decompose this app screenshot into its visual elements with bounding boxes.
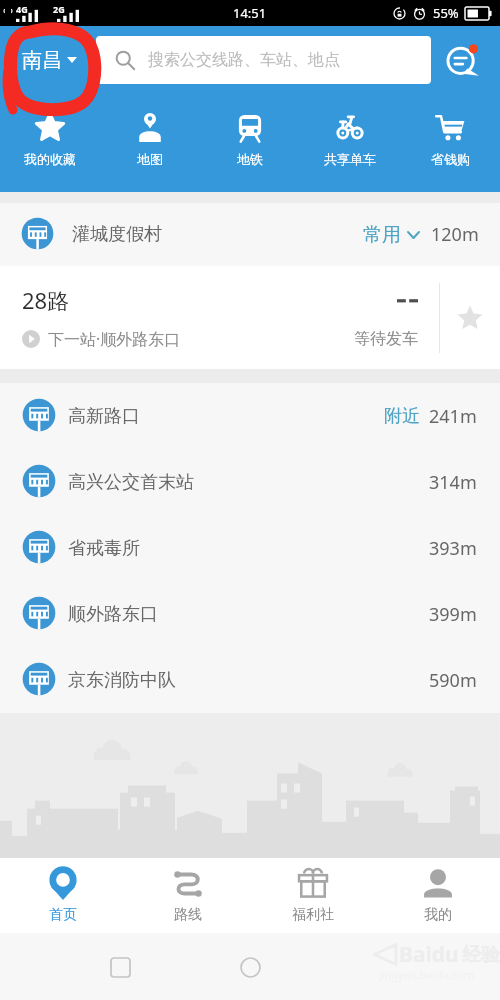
staticText: 14:51 xyxy=(233,4,267,22)
button[interactable]: Messages xyxy=(437,34,489,86)
button[interactable]: 高新路口 xyxy=(0,383,500,449)
button[interactable]: 28路 xyxy=(0,266,500,369)
staticText: 下一站·顺外路东口 xyxy=(48,328,181,350)
staticText: 高兴公交首末站 xyxy=(68,471,194,494)
button[interactable]: 省钱购 xyxy=(400,112,500,167)
staticText: 120m xyxy=(431,222,479,247)
staticText: 等待发车 xyxy=(354,329,418,349)
staticText: 京东消防中队 xyxy=(68,669,176,692)
staticText: 399m xyxy=(429,602,477,627)
staticText: 共享单车 xyxy=(324,151,376,167)
staticText: 2G xyxy=(53,3,65,15)
staticText: 28路 xyxy=(22,285,70,315)
button[interactable]: 路线 xyxy=(125,858,250,933)
button[interactable]: 福利社 xyxy=(250,858,375,933)
button[interactable]: 灌城度假村 xyxy=(0,203,500,266)
staticText: 省钱购 xyxy=(431,151,470,167)
staticText: 55% xyxy=(433,4,459,22)
staticText: 路线 xyxy=(174,906,202,924)
staticText: 地铁 xyxy=(237,151,263,167)
staticText: 搜索公交线路、车站、地点 xyxy=(148,50,340,70)
staticText: 经验 xyxy=(462,943,500,967)
staticText: 首页 xyxy=(49,906,77,924)
button[interactable]: 省戒毒所 xyxy=(0,515,500,581)
button[interactable]: 顺外路东口 xyxy=(0,581,500,647)
button[interactable]: 南昌 xyxy=(14,40,85,80)
staticText: 我的 xyxy=(424,906,452,924)
button[interactable]: 我的收藏 xyxy=(0,112,100,167)
staticText: 我的收藏 xyxy=(24,151,76,167)
button[interactable]: 地图 xyxy=(100,112,200,167)
button[interactable]: Home xyxy=(224,941,276,993)
button[interactable]: 首页 xyxy=(0,858,125,933)
staticText: 314m xyxy=(429,470,477,495)
staticText: 590m xyxy=(429,668,477,693)
button[interactable]: 地铁 xyxy=(200,112,300,167)
staticText: 顺外路东口 xyxy=(68,603,158,626)
staticText: 附近 xyxy=(384,405,420,428)
staticText: 393m xyxy=(429,536,477,561)
staticText: 高新路口 xyxy=(68,405,140,428)
staticText: 南昌 xyxy=(22,48,62,73)
staticText: 4G xyxy=(16,3,28,15)
button[interactable]: Favourite xyxy=(440,266,500,369)
staticText: 241m xyxy=(429,404,477,429)
button[interactable]: 搜索公交线路、车站、地点 xyxy=(96,36,431,84)
staticText: 地图 xyxy=(137,151,163,167)
button[interactable]: 我的 xyxy=(375,858,500,933)
staticText: 灌城度假村 xyxy=(72,223,162,246)
staticText: 省戒毒所 xyxy=(68,537,140,560)
staticText: 常用 xyxy=(363,223,401,247)
button[interactable]: 共享单车 xyxy=(300,112,400,167)
staticText: 福利社 xyxy=(292,906,334,924)
button[interactable]: 高兴公交首末站 xyxy=(0,449,500,515)
button[interactable]: 京东消防中队 xyxy=(0,647,500,713)
staticText: Baidu xyxy=(399,940,459,969)
button[interactable]: Recents xyxy=(94,941,146,993)
